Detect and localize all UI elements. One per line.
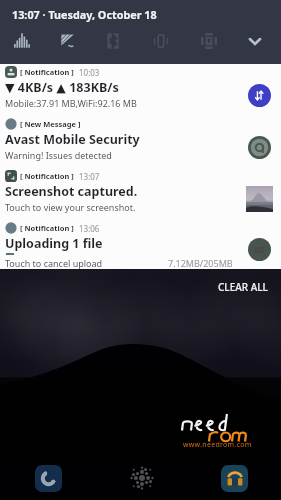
- staticText: [ New Message ]: [20, 119, 81, 129]
- staticText: [ Notification ]: [20, 171, 74, 181]
- staticText: MI: [254, 244, 265, 255]
- staticText: Uploading 1 file: [5, 235, 103, 252]
- staticText: ▼ 4KB/s ▲ 183KB/s: [5, 79, 119, 96]
- button[interactable]: [ Notification ]: [0, 220, 281, 269]
- staticText: [ Notification ]: [20, 67, 74, 77]
- staticText: 13:07: [79, 171, 100, 182]
- staticText: www.needrom.com: [183, 440, 252, 450]
- staticText: Screenshot captured.: [5, 183, 138, 200]
- button[interactable]: Vibrate: [139, 22, 183, 60]
- staticText: Avast Mobile Security: [5, 131, 140, 148]
- button[interactable]: Play Music: [221, 465, 248, 492]
- staticText: 13:06: [79, 223, 100, 234]
- staticText: 13:07 · Tuesday, October 18: [12, 7, 157, 22]
- staticText: Touch to cancel upload: [5, 257, 103, 269]
- button[interactable]: Data usage: [0, 22, 44, 60]
- button[interactable]: CLEAR ALL: [204, 269, 281, 298]
- button[interactable]: [ Notification ]: [0, 64, 281, 116]
- staticText: Touch to view your screenshot.: [5, 201, 136, 213]
- button[interactable]: Auto rotate: [187, 22, 231, 60]
- staticText: 7.12MB/205MB: [168, 257, 233, 269]
- staticText: Warning! Issues detected: [5, 149, 112, 161]
- staticText: [ Notification ]: [20, 223, 74, 233]
- button[interactable]: Mobile data: [46, 22, 90, 60]
- staticText: Mobile:37.91 MB,WiFi:92.16 MB: [5, 97, 137, 109]
- button[interactable]: Phone: [35, 465, 62, 492]
- button[interactable]: Bluetooth: [91, 22, 135, 60]
- button[interactable]: [ New Message ]: [0, 116, 281, 168]
- staticText: 10:03: [79, 67, 100, 78]
- staticText: CLEAR ALL: [218, 280, 268, 294]
- button[interactable]: All apps: [128, 464, 156, 492]
- button[interactable]: Expand quick settings: [233, 22, 277, 60]
- button[interactable]: [ Notification ]: [0, 168, 281, 220]
